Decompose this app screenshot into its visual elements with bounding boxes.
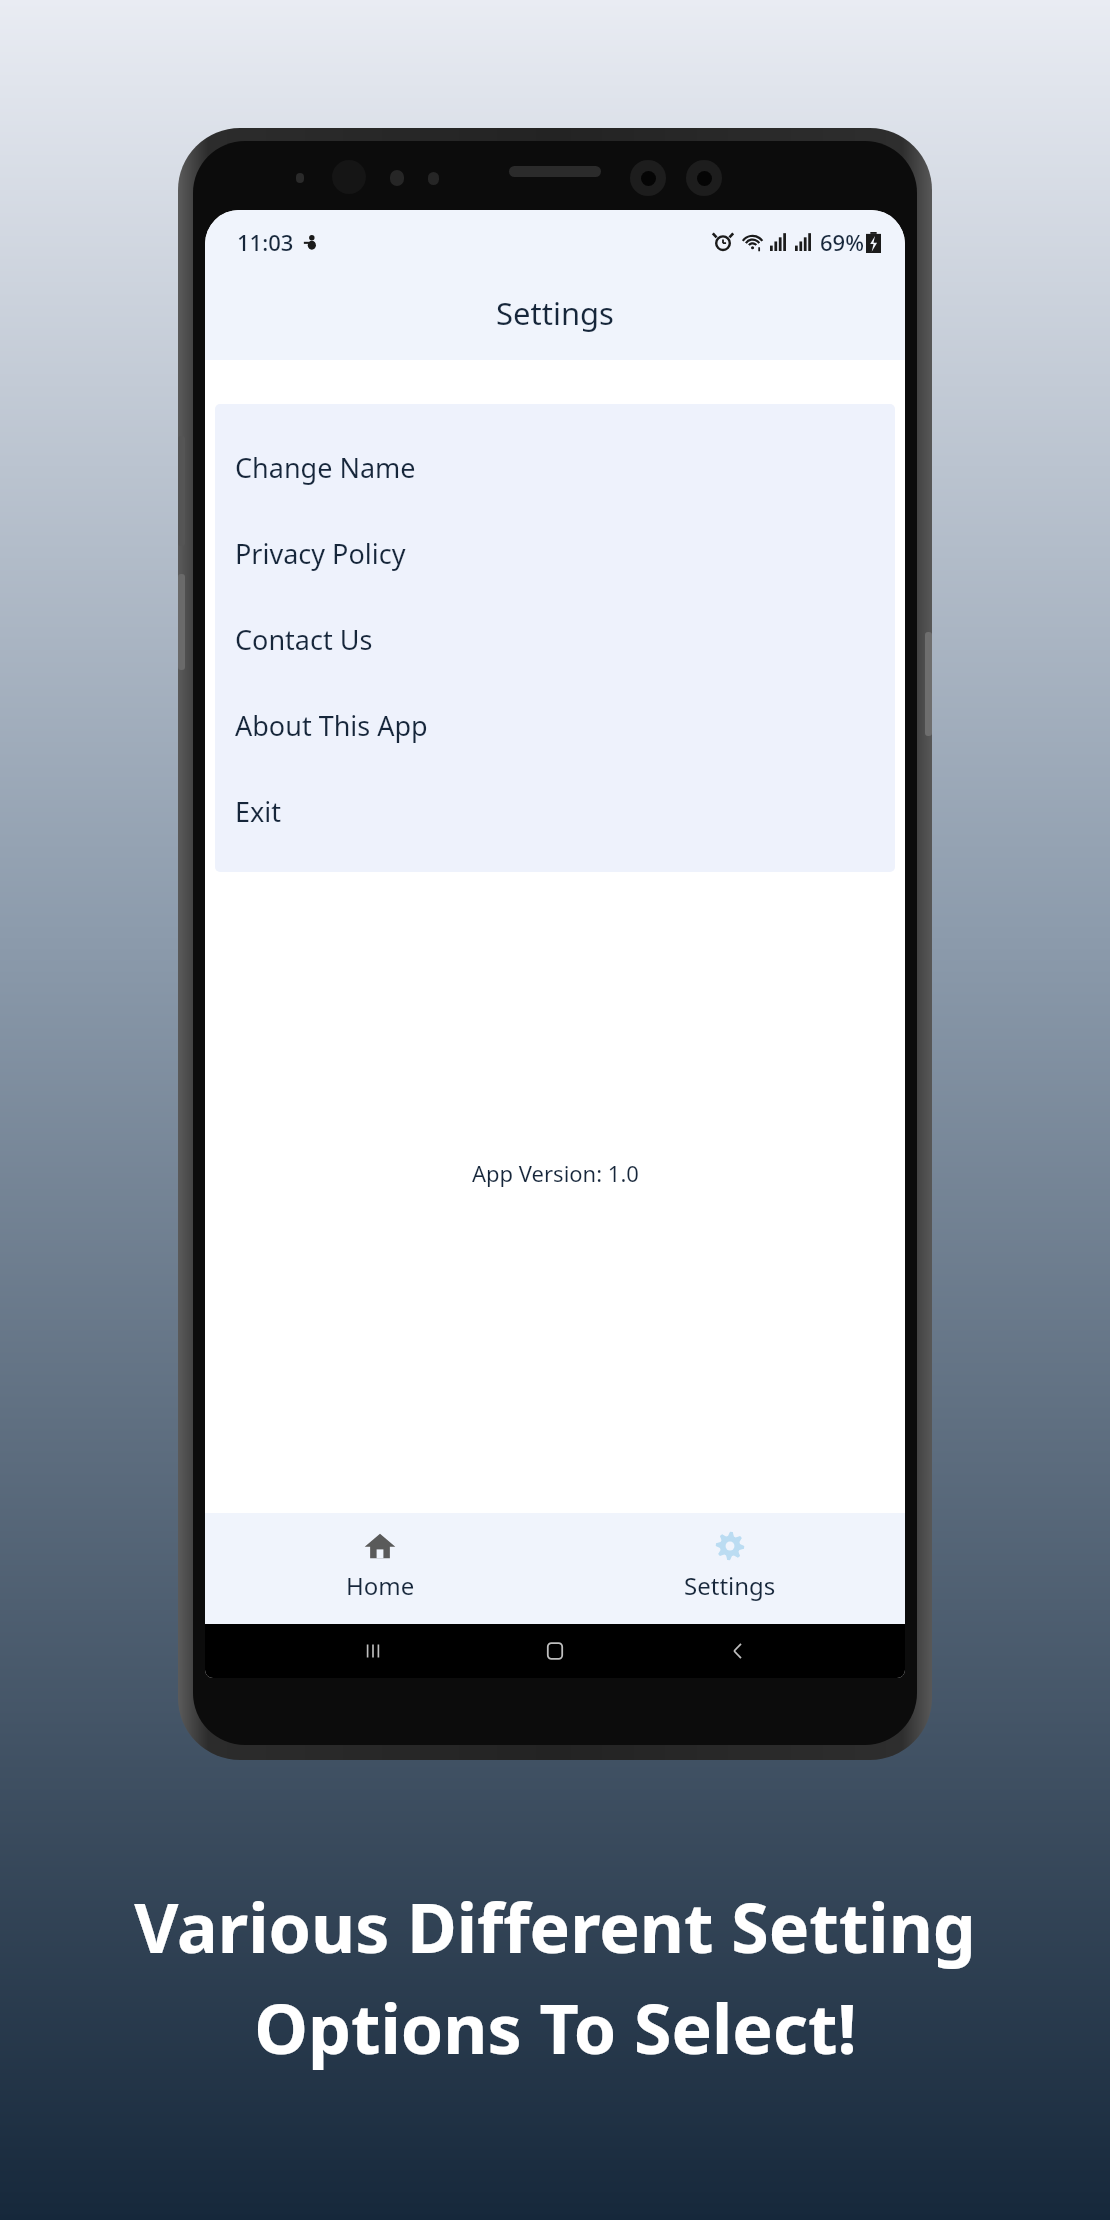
button[interactable]: Home — [540, 1636, 570, 1666]
staticText: Contact Us — [235, 621, 373, 658]
other: Home — [363, 1529, 397, 1563]
staticText: Settings — [684, 1569, 776, 1602]
button[interactable]: Exit — [215, 768, 895, 854]
staticText: 69% — [820, 227, 864, 257]
button[interactable]: Contact Us — [215, 596, 895, 682]
staticText: Exit — [235, 793, 282, 830]
staticText: Privacy Policy — [235, 535, 406, 572]
button[interactable]: Back — [723, 1636, 753, 1666]
staticText: Change Name — [235, 449, 416, 486]
staticText: Settings — [496, 292, 614, 334]
button[interactable]: Settings — [555, 1513, 905, 1624]
button[interactable]: Home — [205, 1513, 555, 1624]
button[interactable]: Privacy Policy — [215, 510, 895, 596]
button[interactable]: About This App — [215, 682, 895, 768]
other: Settings — [713, 1529, 747, 1563]
staticText: Various Different Setting — [134, 1880, 976, 1973]
button[interactable]: Recents — [358, 1636, 388, 1666]
button[interactable]: Change Name — [215, 424, 895, 510]
staticText: App Version: 1.0 — [472, 1158, 639, 1188]
staticText: About This App — [235, 707, 428, 744]
staticText: Home — [346, 1569, 415, 1602]
staticText: Options To Select! — [254, 1981, 857, 2074]
staticText: 11:03 — [237, 227, 294, 257]
